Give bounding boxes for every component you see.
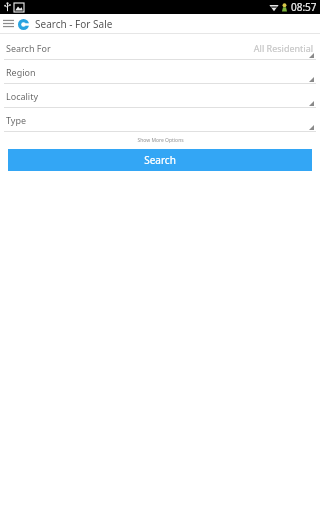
staticText: Show More Options [137, 137, 184, 144]
button[interactable]: Open navigation drawer [0, 14, 16, 33]
button[interactable]: Locality [0, 84, 320, 108]
staticText: Search [144, 153, 176, 167]
staticText: Locality [6, 90, 39, 102]
staticText: Type [6, 114, 27, 126]
button[interactable]: App logo [16, 17, 30, 31]
button[interactable]: Search [8, 149, 312, 171]
staticText: Search For [6, 42, 51, 54]
button[interactable]: Search For [0, 36, 320, 60]
staticText: All Residential [253, 42, 313, 54]
staticText: Search - For Sale [35, 17, 113, 31]
button[interactable]: Region [0, 60, 320, 84]
staticText: 08:57 [291, 0, 317, 14]
button[interactable]: Show More Options [131, 135, 190, 146]
staticText: Region [6, 66, 36, 78]
button[interactable]: Type [0, 108, 320, 132]
